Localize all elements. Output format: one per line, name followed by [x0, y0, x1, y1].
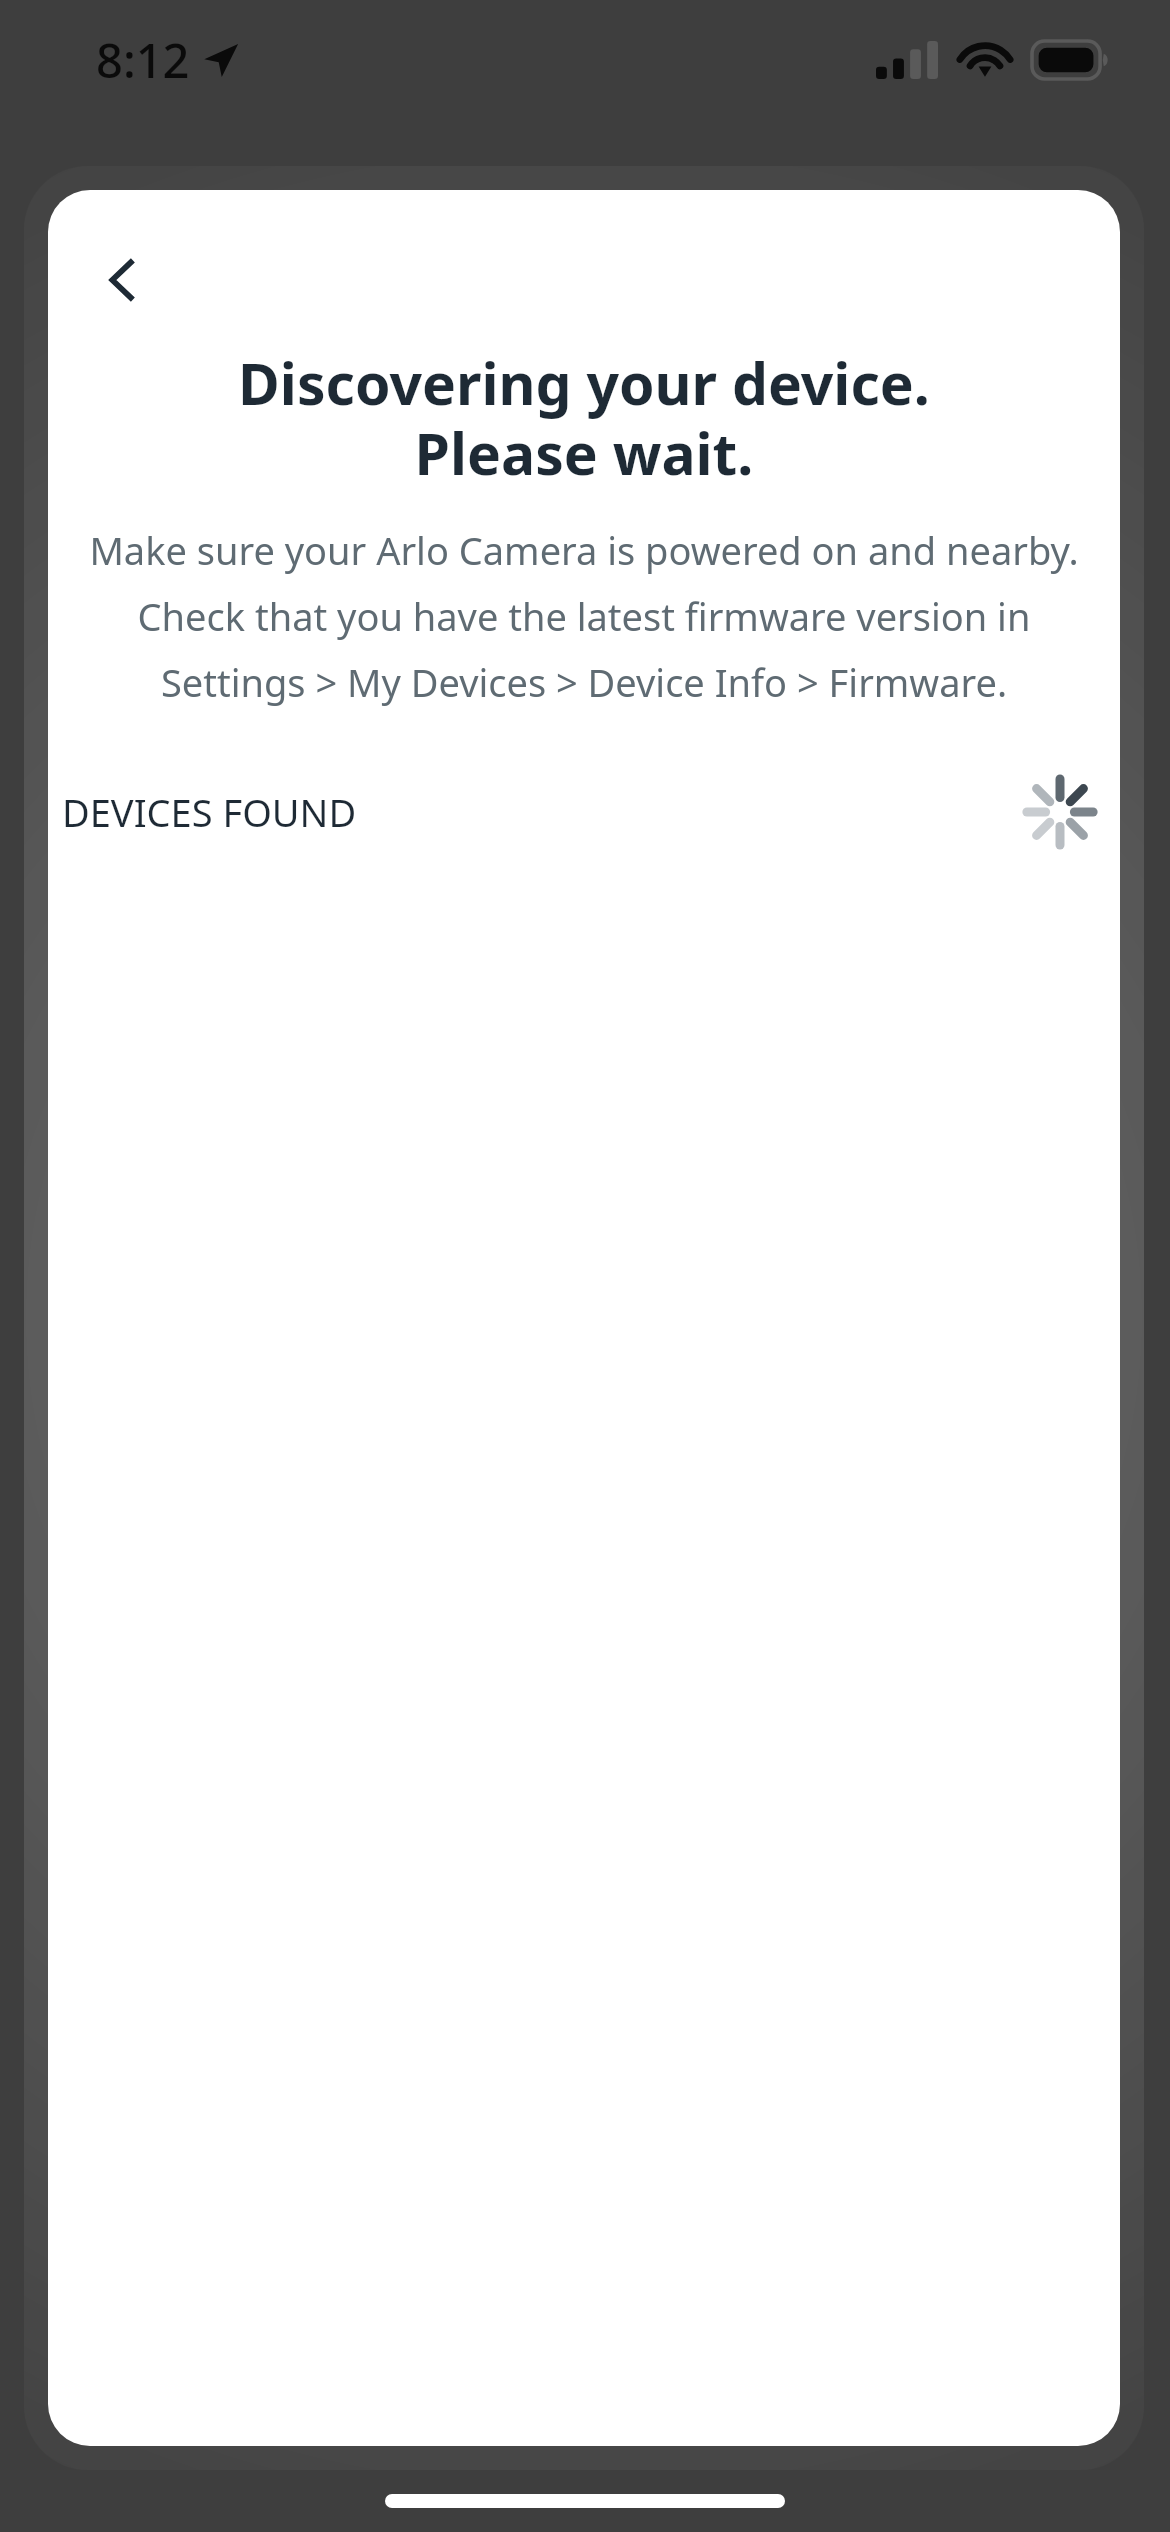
staticText: Discovering your device. Please wait. — [92, 344, 1076, 492]
staticText: DEVICES FOUND — [62, 786, 357, 838]
button[interactable]: Back — [74, 232, 170, 328]
staticText: 8:12 — [96, 28, 190, 92]
staticText: Make sure your Arlo Camera is powered on… — [74, 524, 1094, 708]
